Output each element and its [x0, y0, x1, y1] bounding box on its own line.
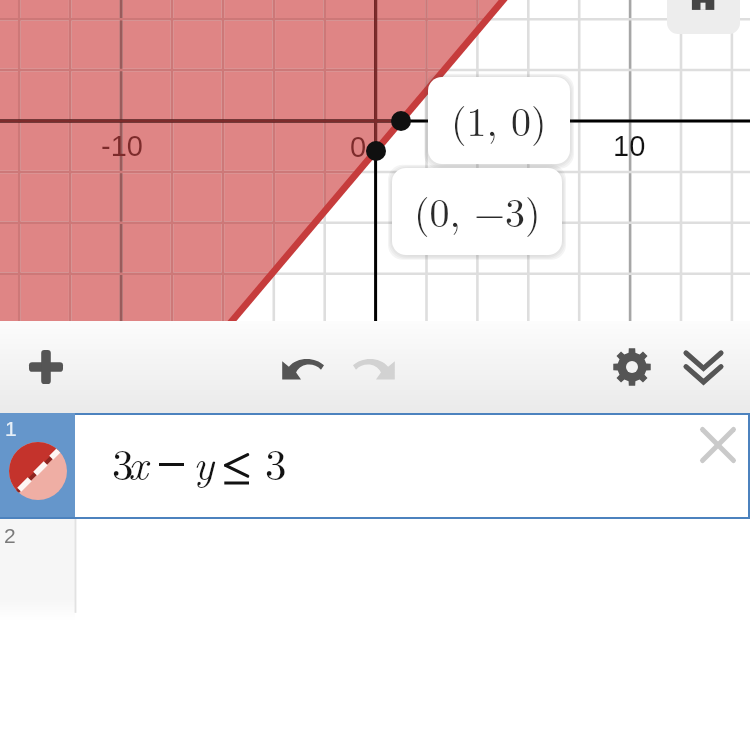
button[interactable]: Settings	[596, 321, 668, 413]
button[interactable]: Add expression	[10, 321, 82, 413]
staticText: (0, −3)	[414, 182, 541, 239]
staticText: (1, 0)	[451, 91, 547, 148]
button[interactable]: 2	[0, 519, 75, 621]
staticText: 3	[265, 432, 287, 493]
staticText: 1	[5, 417, 17, 440]
staticText: y	[193, 432, 214, 493]
staticText: 2	[4, 524, 16, 547]
button[interactable]: Collapse keypad	[667, 321, 739, 413]
button[interactable]: Undo	[266, 321, 338, 413]
staticText: 10	[613, 130, 646, 162]
staticText: 3	[112, 432, 134, 493]
staticText: x	[128, 432, 148, 493]
staticText: -10	[101, 130, 143, 162]
button[interactable]: 1	[0, 413, 75, 519]
button[interactable]: Reset zoom	[667, 0, 740, 34]
button[interactable]: Delete expression	[686, 413, 750, 477]
staticText: 0	[350, 131, 367, 163]
button[interactable]: Redo	[338, 321, 410, 413]
